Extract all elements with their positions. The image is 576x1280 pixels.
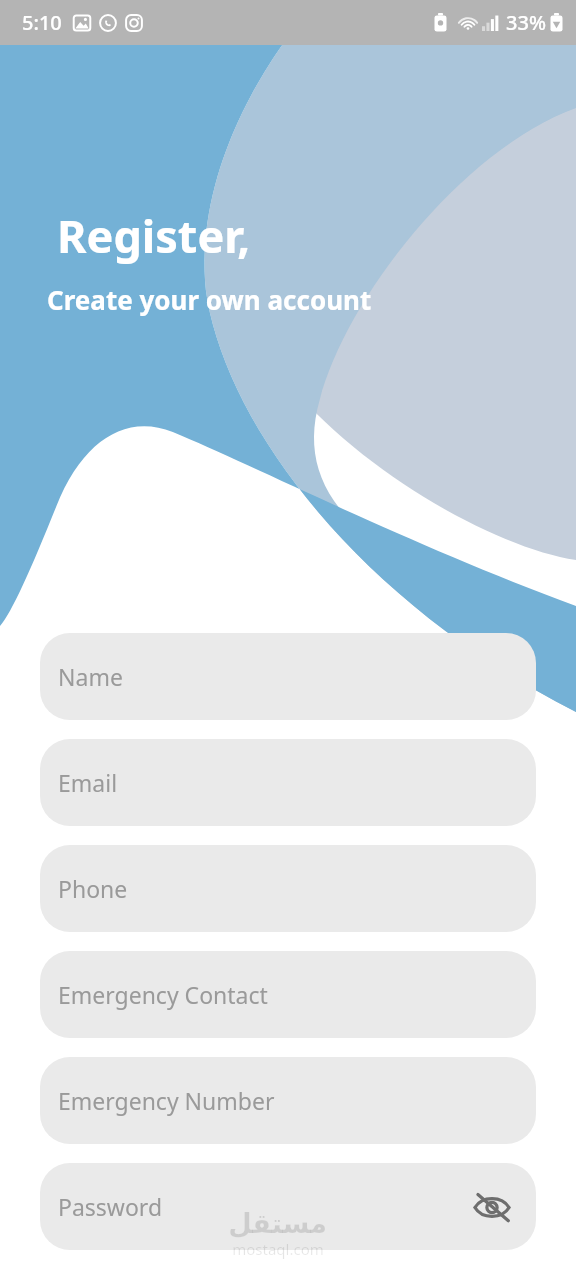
staticText: Name <box>58 661 123 692</box>
button[interactable]: Name <box>40 633 536 720</box>
staticText: Emergency Number <box>58 1085 275 1116</box>
button[interactable]: Show password <box>468 1183 516 1231</box>
staticText: Password <box>58 1191 163 1222</box>
staticText: Phone <box>58 873 128 904</box>
staticText: Register, <box>57 205 251 266</box>
button[interactable]: Phone <box>40 845 536 932</box>
staticText: Emergency Contact <box>58 979 268 1010</box>
button[interactable]: Emergency Contact <box>40 951 536 1038</box>
staticText: 33% <box>506 9 546 36</box>
staticText: مستقل <box>228 1208 327 1239</box>
staticText: 5:10 <box>22 9 62 36</box>
staticText: Email <box>58 767 118 798</box>
button[interactable]: Emergency Number <box>40 1057 536 1144</box>
button[interactable]: Email <box>40 739 536 826</box>
staticText: mostaql.com <box>232 1239 324 1259</box>
button[interactable]: Password <box>40 1163 536 1250</box>
staticText: Create your own account <box>47 282 372 317</box>
